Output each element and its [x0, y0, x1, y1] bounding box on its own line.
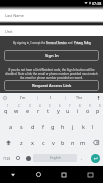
staticText: v	[52, 139, 55, 146]
staticText: b	[61, 139, 65, 146]
staticText: m	[80, 139, 86, 146]
button[interactable]: Switch input method	[77, 166, 103, 183]
button[interactable]: s	[16, 118, 27, 134]
staticText: I'm	[20, 95, 26, 100]
staticText: 7	[69, 104, 71, 108]
button[interactable]: p	[93, 102, 103, 118]
button[interactable]: The	[65, 93, 93, 102]
staticText: n	[71, 139, 75, 146]
button[interactable]: n	[68, 134, 78, 150]
staticText: By signing in, I accept the	[13, 41, 46, 45]
staticText: u	[66, 107, 70, 114]
staticText: 07:38	[92, 1, 102, 6]
staticText: .	[81, 155, 83, 161]
button[interactable]: Voice input	[93, 93, 103, 102]
staticText: ?123	[3, 156, 11, 161]
staticText: Unit	[5, 29, 13, 34]
button[interactable]: b	[58, 134, 68, 150]
button[interactable]: v	[48, 134, 58, 150]
button[interactable]: Last Name	[0, 10, 103, 21]
staticText: Last Name	[5, 13, 25, 18]
staticText: j	[72, 123, 74, 130]
button[interactable]: Enter	[91, 154, 100, 163]
button[interactable]: Terms of Service	[46, 41, 67, 45]
button[interactable]: Switch language	[23, 150, 33, 166]
staticText: 8	[79, 104, 81, 108]
staticText: w	[14, 107, 19, 114]
staticText: Sign In	[45, 53, 59, 59]
button[interactable]: d	[27, 118, 38, 134]
staticText: t	[47, 107, 49, 114]
button[interactable]: y	[53, 102, 63, 118]
button[interactable]: j	[68, 118, 78, 134]
staticText: p	[96, 107, 100, 114]
staticText: d	[31, 123, 35, 130]
staticText: h	[61, 123, 65, 130]
staticText: x	[31, 139, 34, 146]
staticText: I	[50, 95, 52, 100]
button[interactable]: I	[37, 93, 65, 102]
button[interactable]: i	[73, 102, 83, 118]
button[interactable]: g	[48, 118, 58, 134]
button[interactable]: .	[77, 150, 87, 166]
staticText: 0	[99, 104, 101, 108]
staticText: f	[42, 123, 44, 130]
button[interactable]: ?123	[0, 150, 13, 166]
button[interactable]: c	[38, 134, 48, 150]
staticText: i	[77, 107, 79, 114]
button[interactable]: Request Access Link	[4, 80, 99, 91]
staticText: Request Access Link	[32, 83, 72, 89]
button[interactable]: a	[5, 118, 16, 134]
button[interactable]: Unit	[0, 26, 103, 36]
staticText: English	[50, 156, 61, 160]
button[interactable]: Recent apps	[51, 166, 77, 183]
staticText: 5	[49, 104, 51, 108]
button[interactable]: Backspace	[88, 134, 103, 150]
button[interactable]: Privacy Policy	[74, 41, 91, 45]
button[interactable]: Hide keyboard	[0, 166, 25, 183]
button[interactable]: w	[11, 102, 22, 118]
button[interactable]: Sign In	[4, 50, 99, 61]
button[interactable]: o	[83, 102, 93, 118]
button[interactable]: q	[0, 102, 11, 118]
button[interactable]: Emoji	[13, 150, 23, 166]
button[interactable]: h	[58, 118, 68, 134]
staticText: a	[9, 123, 13, 130]
button[interactable]: x	[27, 134, 38, 150]
button[interactable]: m	[78, 134, 88, 150]
button[interactable]: e	[22, 102, 33, 118]
staticText: 4	[39, 104, 41, 108]
button[interactable]: Expand suggestions	[0, 93, 9, 102]
staticText: e	[26, 107, 30, 114]
staticText: r	[37, 107, 40, 114]
staticText: z	[20, 139, 23, 146]
button[interactable]: I'm	[9, 93, 37, 102]
staticText: If you do not have a Unit/Resident code,…	[3, 68, 100, 80]
button[interactable]: f	[38, 118, 48, 134]
button[interactable]: l	[88, 118, 98, 134]
staticText: o	[86, 107, 90, 114]
staticText: l	[92, 123, 94, 130]
staticText: 6	[59, 104, 61, 108]
staticText: c	[42, 139, 45, 146]
staticText: q	[4, 107, 8, 114]
staticText: k	[82, 123, 85, 130]
staticText: 3	[29, 104, 31, 108]
staticText: 9	[89, 104, 91, 108]
button[interactable]: k	[78, 118, 88, 134]
staticText: 1	[7, 104, 9, 108]
button[interactable]: z	[16, 134, 27, 150]
staticText: y	[57, 107, 60, 114]
staticText: s	[20, 123, 23, 130]
staticText: and	[67, 41, 74, 45]
button[interactable]: Home	[25, 166, 51, 183]
button[interactable]: Shift	[0, 134, 16, 150]
button[interactable]: t	[43, 102, 53, 118]
staticText: 2	[18, 104, 20, 108]
staticText: The	[76, 95, 83, 100]
button[interactable]: English	[33, 154, 77, 162]
button[interactable]: r	[33, 102, 43, 118]
button[interactable]: u	[63, 102, 73, 118]
staticText: g	[51, 123, 55, 130]
